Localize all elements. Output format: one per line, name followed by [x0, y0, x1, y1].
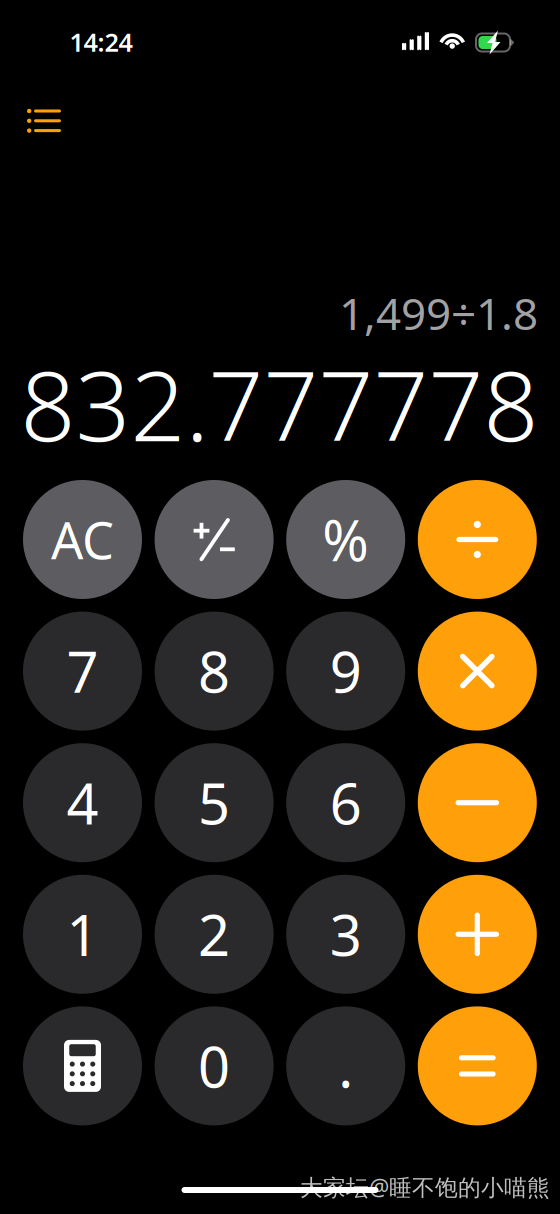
button[interactable]: 9 — [286, 612, 405, 731]
staticText: 6 — [330, 765, 362, 840]
staticText: % — [322, 502, 369, 577]
button[interactable]: AC — [23, 480, 142, 599]
button[interactable]: Divide — [418, 480, 537, 599]
staticText: 0 — [198, 1029, 230, 1103]
button[interactable]: 2 — [155, 875, 274, 994]
staticText: . — [338, 1029, 353, 1103]
button[interactable]: Plus minus — [155, 480, 274, 599]
staticText: 1 — [66, 897, 98, 971]
button[interactable]: 4 — [23, 743, 142, 862]
staticText: AC — [51, 506, 114, 573]
button[interactable]: 6 — [286, 743, 405, 862]
button[interactable]: 7 — [23, 612, 142, 731]
button[interactable]: 3 — [286, 875, 405, 994]
button[interactable]: Multiply — [418, 612, 537, 731]
staticText: 14:24 — [69, 25, 132, 59]
staticText: 4 — [66, 765, 98, 840]
staticText: 8 — [198, 634, 230, 708]
staticText: 2 — [198, 897, 230, 971]
staticText: 9 — [330, 634, 362, 708]
staticText: 1,499÷1.8 — [339, 284, 538, 342]
button[interactable]: Calculator — [23, 1006, 142, 1125]
button[interactable]: Equals — [418, 1006, 537, 1125]
button[interactable]: Minus — [418, 743, 537, 862]
staticText: 大家坛@睡不饱的小喵熊 — [300, 1172, 550, 1202]
staticText: 7 — [66, 634, 98, 708]
staticText: 5 — [198, 765, 230, 840]
button[interactable]: History — [13, 93, 75, 149]
button[interactable]: % — [286, 480, 405, 599]
button[interactable]: 8 — [155, 612, 274, 731]
staticText: 832.777778 — [20, 340, 538, 468]
button[interactable]: 0 — [155, 1006, 274, 1125]
button[interactable]: . — [286, 1006, 405, 1125]
staticText: 3 — [330, 897, 362, 971]
button[interactable]: Plus — [418, 875, 537, 994]
button[interactable]: 5 — [155, 743, 274, 862]
button[interactable]: 1 — [23, 875, 142, 994]
